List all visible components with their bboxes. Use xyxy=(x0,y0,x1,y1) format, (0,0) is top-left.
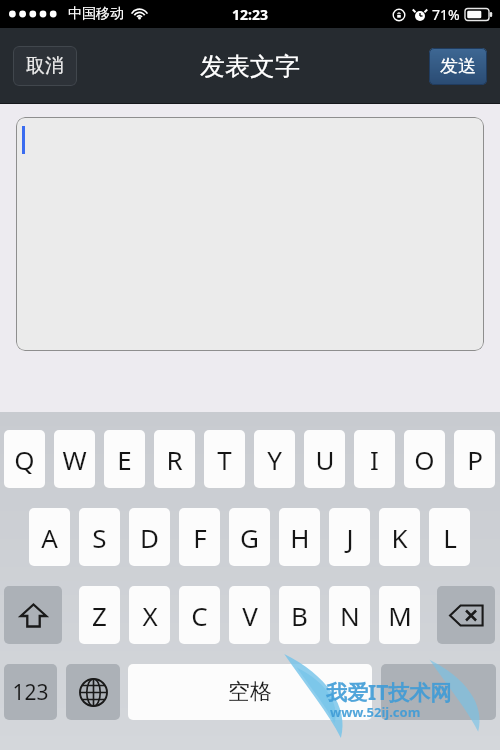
staticText: 空格 xyxy=(228,678,272,706)
button[interactable]: 123 xyxy=(4,664,57,720)
button[interactable]: F xyxy=(179,508,220,566)
button[interactable]: T xyxy=(204,430,245,488)
staticText: B xyxy=(291,598,308,633)
button[interactable]: I xyxy=(354,430,395,488)
button[interactable]: C xyxy=(179,586,220,644)
button[interactable]: S xyxy=(79,508,120,566)
button[interactable]: Z xyxy=(79,586,120,644)
staticText: 中国移动 xyxy=(68,5,124,23)
button[interactable]: 取消 xyxy=(13,46,77,86)
staticText: W xyxy=(62,442,87,477)
button[interactable] xyxy=(16,117,484,351)
button[interactable]: G xyxy=(229,508,270,566)
button[interactable]: W xyxy=(54,430,95,488)
button[interactable]: O xyxy=(404,430,445,488)
staticText: V xyxy=(242,598,258,633)
staticText: N xyxy=(340,598,360,633)
button[interactable]: V xyxy=(229,586,270,644)
button[interactable]: R xyxy=(154,430,195,488)
button[interactable]: E xyxy=(104,430,145,488)
button[interactable]: Y xyxy=(254,430,295,488)
button[interactable]: N xyxy=(329,586,370,644)
button[interactable]: A xyxy=(29,508,70,566)
staticText: X xyxy=(142,598,158,633)
staticText: 发表文字 xyxy=(200,51,300,82)
staticText: 取消 xyxy=(26,54,64,78)
button[interactable]: H xyxy=(279,508,320,566)
staticText: U xyxy=(315,442,335,477)
staticText: S xyxy=(92,520,107,555)
staticText: Z xyxy=(92,598,107,633)
staticText: Q xyxy=(14,442,35,477)
staticText: 12:23 xyxy=(232,5,268,24)
staticText: P xyxy=(467,442,483,477)
button[interactable]: Change keyboard xyxy=(66,664,120,720)
button[interactable]: Return xyxy=(381,664,496,720)
staticText: O xyxy=(414,442,435,477)
staticText: Y xyxy=(267,442,282,477)
button[interactable]: Q xyxy=(4,430,45,488)
staticText: T xyxy=(217,442,232,477)
staticText: E xyxy=(117,442,132,477)
staticText: www.52ij.com xyxy=(330,703,421,721)
button[interactable]: K xyxy=(379,508,420,566)
staticText: J xyxy=(346,520,354,555)
button[interactable]: J xyxy=(329,508,370,566)
staticText: R xyxy=(166,442,183,477)
button[interactable]: D xyxy=(129,508,170,566)
button[interactable]: L xyxy=(429,508,470,566)
button[interactable]: 空格 xyxy=(128,664,372,720)
staticText: 发送 xyxy=(440,55,476,78)
staticText: G xyxy=(240,520,259,555)
button[interactable]: P xyxy=(454,430,495,488)
staticText: 我爱IT技术网 xyxy=(326,678,452,707)
staticText: A xyxy=(41,520,58,555)
button[interactable]: 发送 xyxy=(429,48,487,85)
staticText: D xyxy=(140,520,159,555)
staticText: 71% xyxy=(432,5,460,24)
button[interactable]: M xyxy=(379,586,420,644)
staticText: K xyxy=(391,520,408,555)
staticText: L xyxy=(443,520,457,555)
staticText: M xyxy=(388,598,412,633)
staticText: I xyxy=(370,442,379,477)
button[interactable]: Shift xyxy=(4,586,62,644)
staticText: C xyxy=(191,598,208,633)
staticText: 123 xyxy=(12,678,49,707)
staticText: H xyxy=(290,520,310,555)
staticText: F xyxy=(193,520,207,555)
button[interactable]: U xyxy=(304,430,345,488)
button[interactable]: X xyxy=(129,586,170,644)
button[interactable]: Delete xyxy=(437,586,495,644)
button[interactable]: B xyxy=(279,586,320,644)
